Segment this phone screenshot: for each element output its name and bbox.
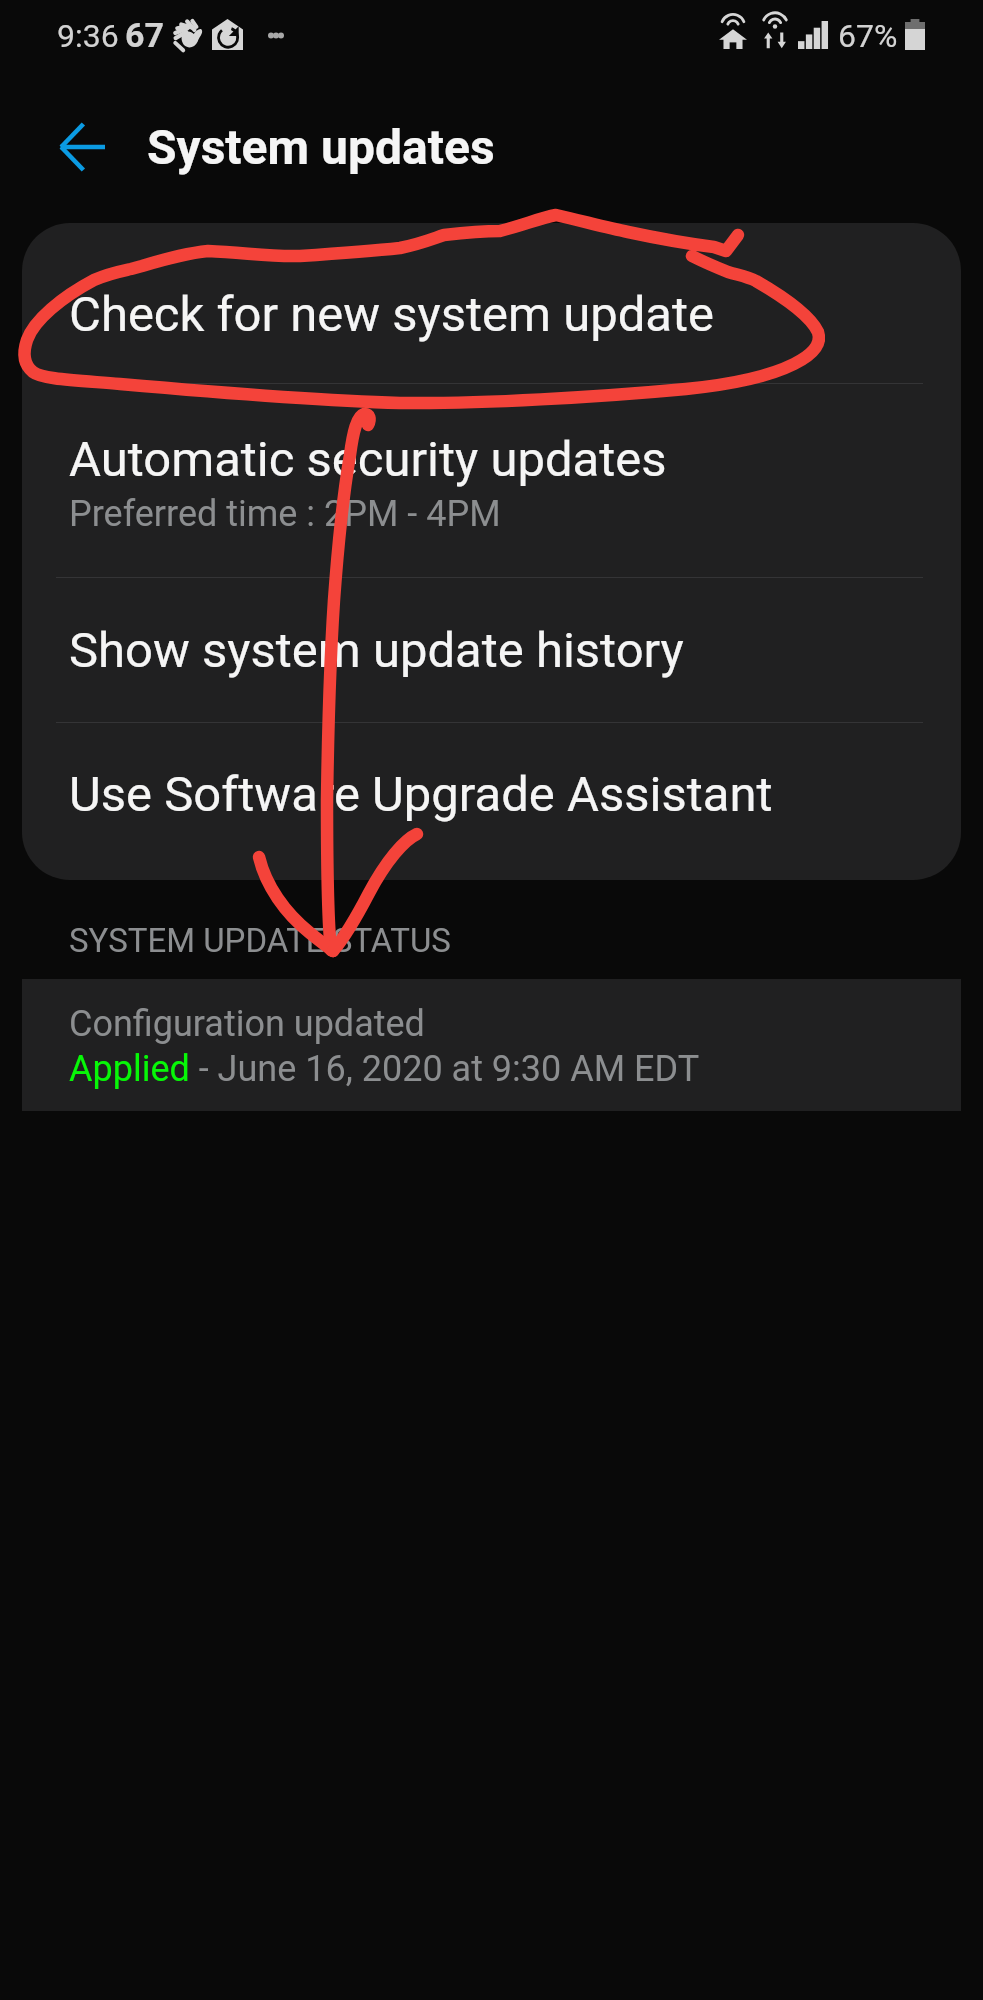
button[interactable]: Back: [48, 113, 116, 181]
staticText: SYSTEM UPDATE STATUS: [69, 921, 451, 960]
staticText: Use Software Upgrade Assistant: [69, 766, 773, 823]
staticText: Check for new system update: [69, 286, 714, 343]
staticText: Automatic security updates: [69, 431, 667, 488]
staticText: 67%: [838, 17, 898, 55]
staticText: Preferred time : 2PM - 4PM: [69, 493, 501, 535]
staticText: System updates: [147, 119, 495, 175]
staticText: Applied - June 16, 2020 at 9:30 AM EDT: [69, 1048, 700, 1090]
staticText: Configuration updated: [69, 1003, 425, 1045]
button[interactable]: Configuration updated: [22, 979, 961, 1111]
staticText: 9:36: [57, 17, 119, 55]
button[interactable]: Use Software Upgrade Assistant: [22, 722, 961, 880]
button[interactable]: Check for new system update: [22, 223, 961, 383]
button[interactable]: Automatic security updates: [22, 383, 961, 577]
staticText: 67: [125, 15, 165, 55]
button[interactable]: Show system update history: [22, 577, 961, 722]
staticText: Show system update history: [69, 622, 684, 679]
